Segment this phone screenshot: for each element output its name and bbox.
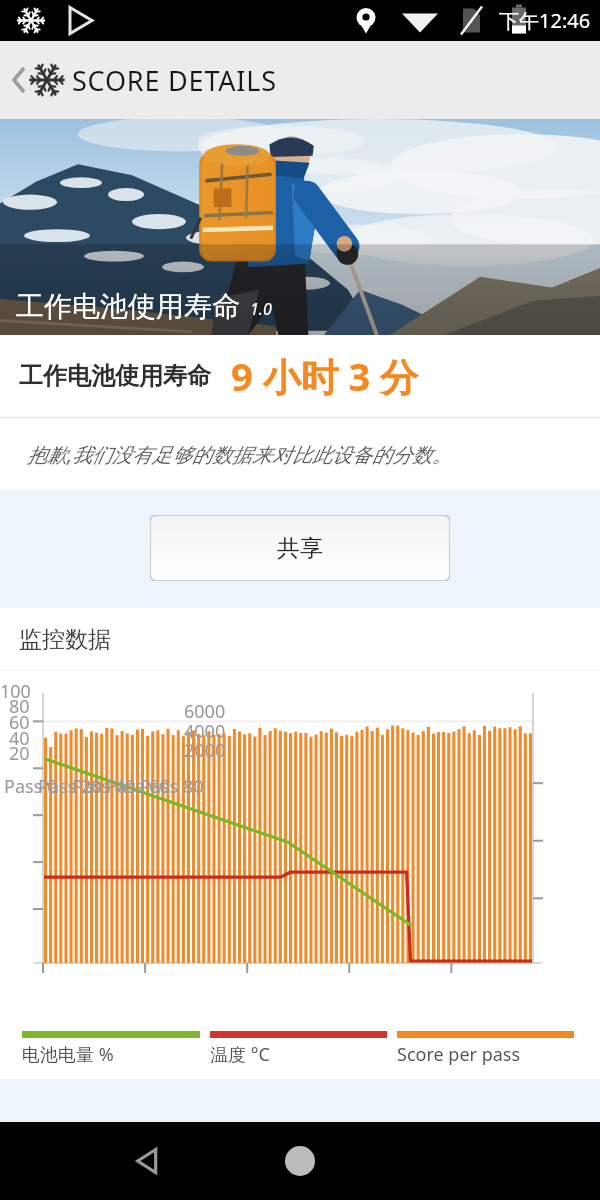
staticText: 温度 °C	[210, 1042, 270, 1067]
staticText: 共享	[277, 534, 323, 563]
button[interactable]: 温度 °C	[210, 1031, 387, 1067]
staticText: Score per pass	[397, 1042, 521, 1067]
button[interactable]: Back	[120, 1133, 176, 1189]
staticText: 工作电池使用寿命	[19, 361, 211, 391]
staticText: 20	[9, 741, 30, 766]
staticText: Pass 80	[140, 774, 204, 799]
staticText: 60	[9, 710, 30, 735]
button[interactable]: 电池电量 %	[22, 1031, 200, 1067]
button[interactable]: Back	[0, 41, 72, 119]
staticText: 100	[0, 679, 31, 704]
staticText: 80	[9, 694, 30, 719]
staticText: 下午12:46	[499, 7, 591, 34]
staticText: 9 小时 3 分	[231, 350, 419, 402]
button[interactable]: Home	[272, 1133, 328, 1189]
staticText: 工作电池使用寿命	[16, 289, 240, 324]
staticText: Pass 0	[4, 774, 58, 799]
staticText: Pass 60	[106, 774, 170, 799]
staticText: 6000	[184, 699, 226, 724]
staticText: 2000	[184, 738, 226, 763]
button[interactable]: Score per pass	[397, 1031, 574, 1067]
staticText: 1.0	[250, 298, 272, 320]
staticText: 40	[9, 726, 30, 751]
staticText: 抱歉,我们没有足够的数据来对比此设备的分数。	[27, 441, 453, 468]
button[interactable]: 共享	[150, 515, 450, 581]
staticText: SCORE DETAILS	[72, 62, 277, 99]
staticText: 4000	[184, 719, 226, 744]
staticText: 电池电量 %	[22, 1042, 114, 1067]
staticText: 监控数据	[19, 625, 111, 654]
staticText: Pass 40	[72, 774, 136, 799]
staticText: Pass 20	[38, 774, 102, 799]
